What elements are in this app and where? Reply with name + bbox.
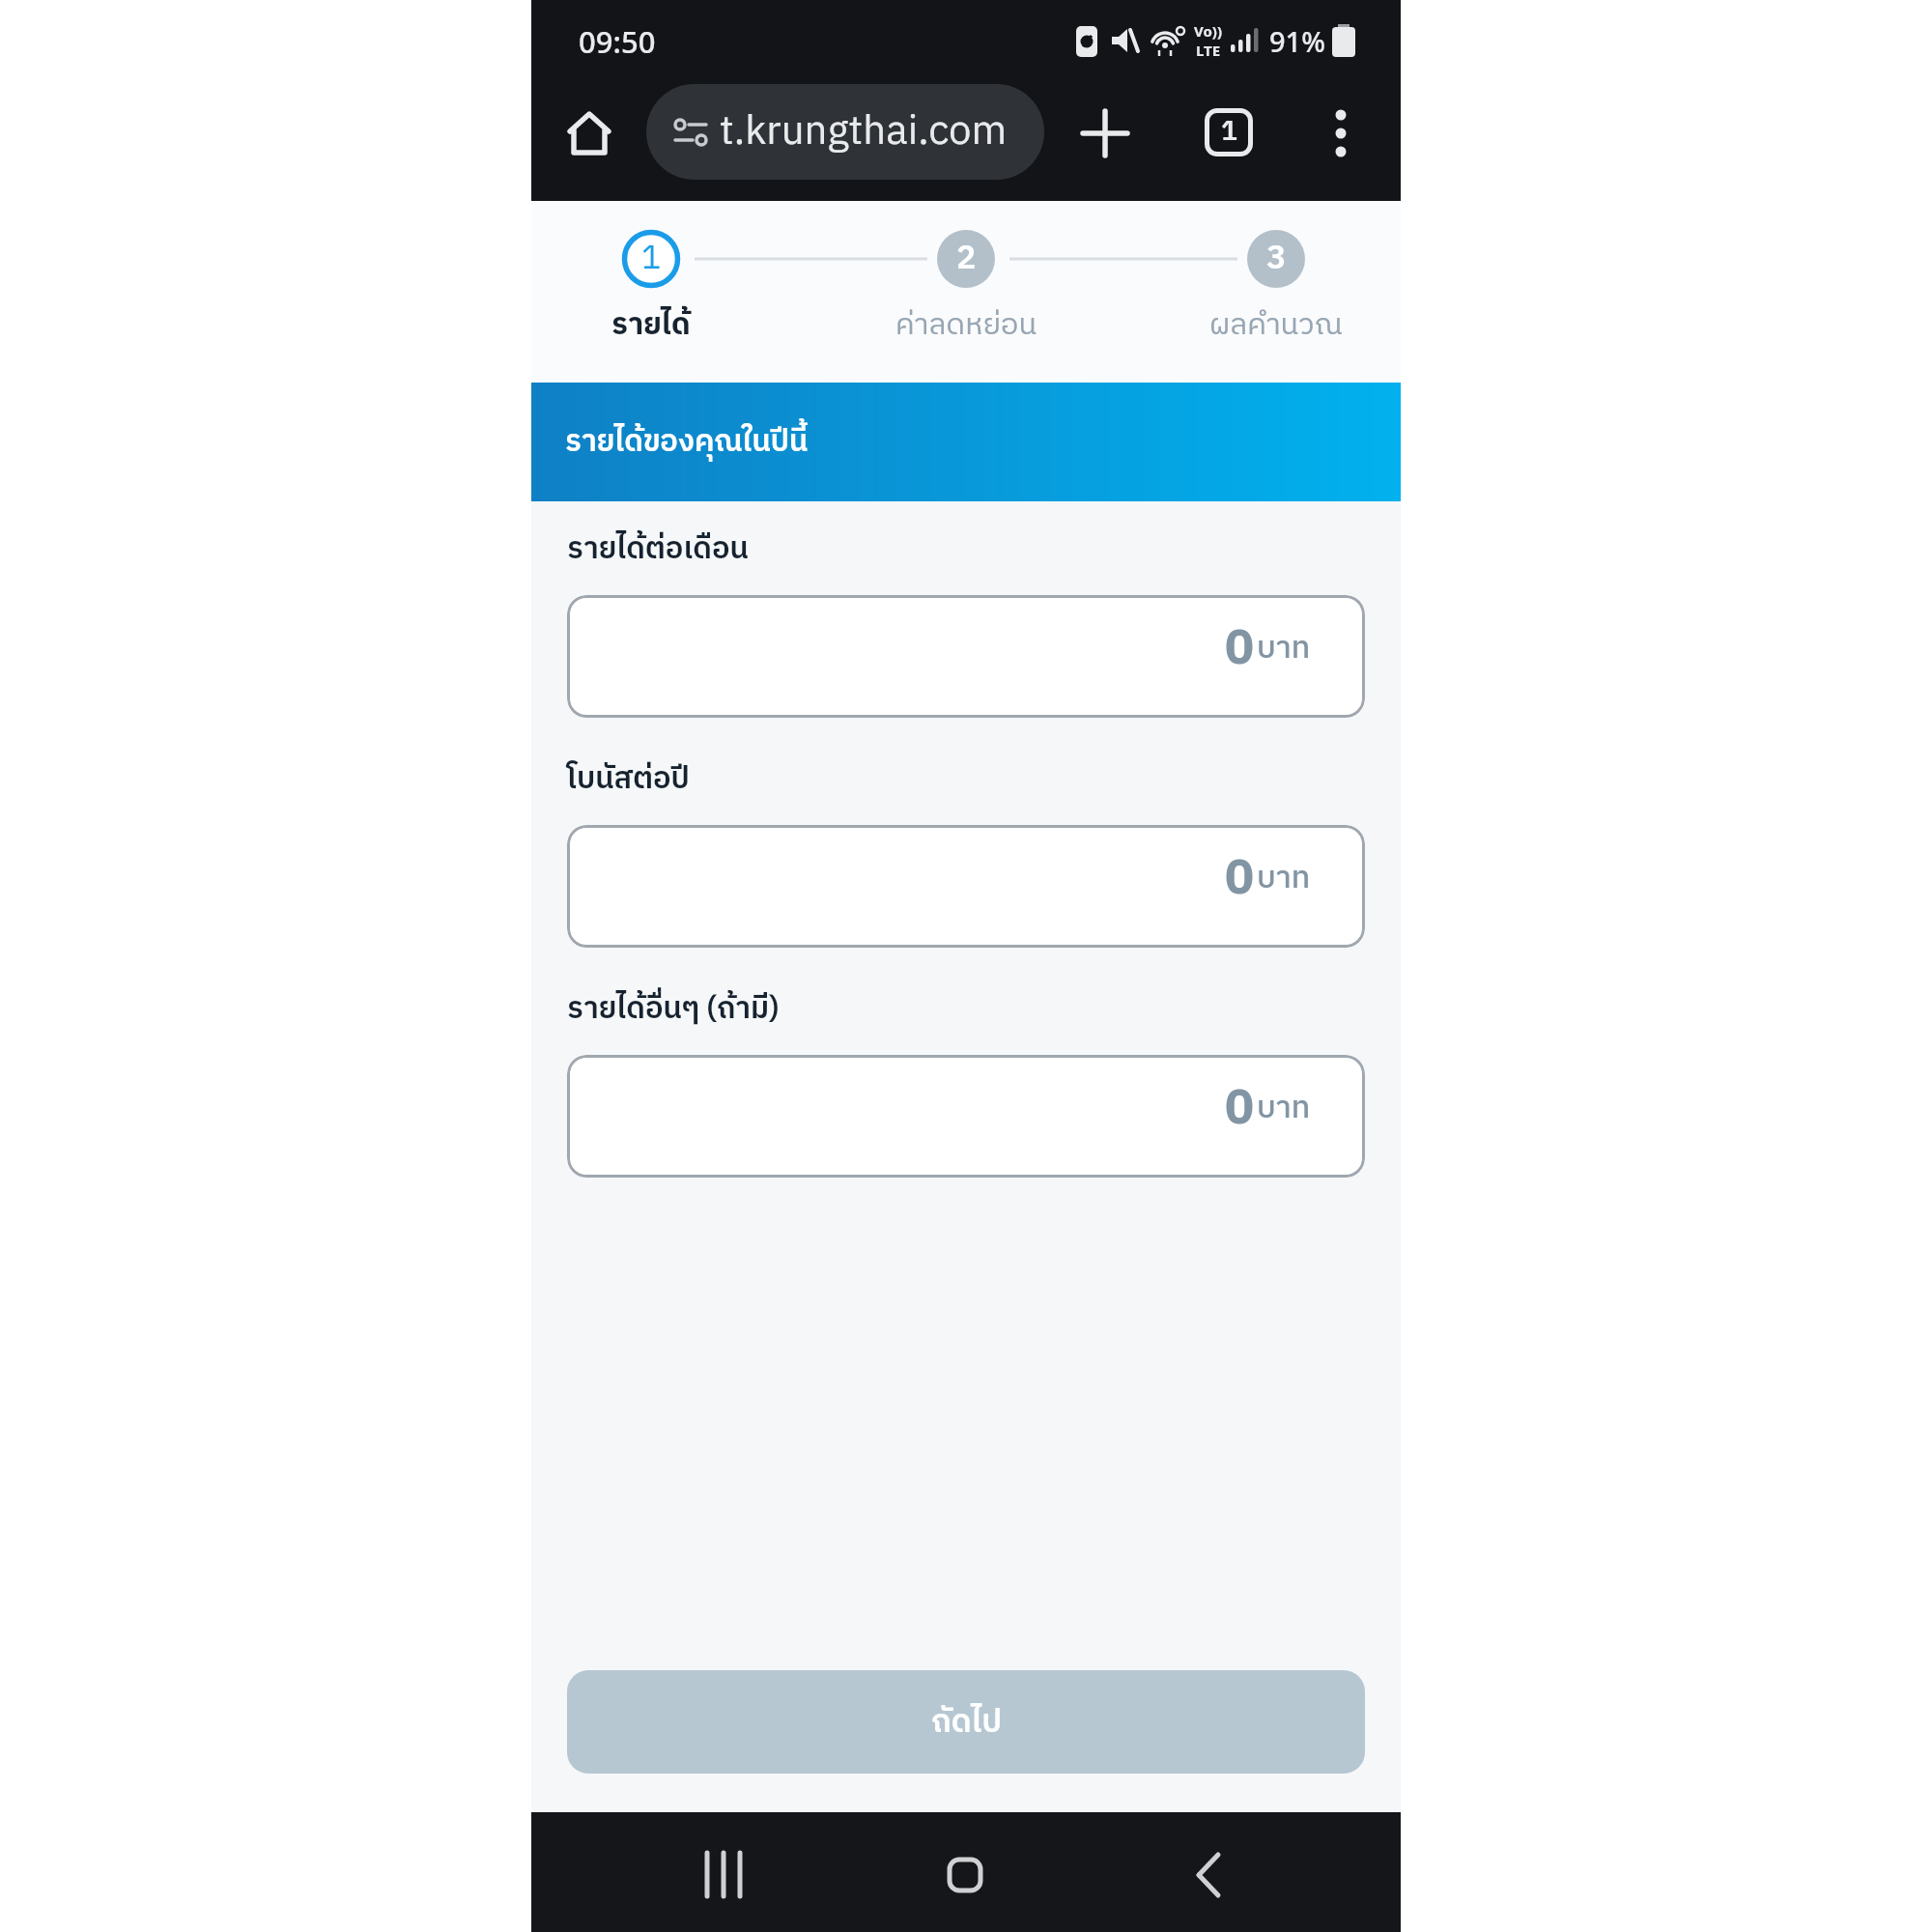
button[interactable]: ค่าลดหย่อน xyxy=(840,294,1092,355)
button[interactable]: t.krungthai.com xyxy=(646,84,1044,180)
staticText: ผลคำนวณ xyxy=(1209,300,1343,350)
staticText: 91% xyxy=(1269,22,1325,60)
staticText: รายได้ต่อเดือน xyxy=(567,525,749,574)
staticText: รายได้อื่นๆ (ถ้ามี) xyxy=(567,984,780,1034)
button[interactable]: 0 xyxy=(567,595,1365,718)
staticText: t.krungthai.com xyxy=(720,99,1008,165)
button[interactable]: 0 xyxy=(567,825,1365,948)
staticText: 2 xyxy=(956,232,977,286)
staticText: Vo)) xyxy=(1194,21,1222,41)
staticText: รายได้ xyxy=(611,300,691,350)
button[interactable]: ถัดไป xyxy=(567,1670,1365,1774)
button[interactable] xyxy=(948,1858,982,1892)
staticText: LTE xyxy=(1196,41,1221,60)
staticText: ถัดไป xyxy=(931,1696,1002,1748)
staticText: บาท xyxy=(1257,853,1311,904)
button[interactable]: ผลคำนวณ xyxy=(1151,294,1402,355)
button[interactable] xyxy=(699,1851,748,1899)
staticText: 3 xyxy=(1266,232,1287,286)
button[interactable]: รายได้ xyxy=(526,294,777,355)
staticText: บาท xyxy=(1257,1083,1311,1134)
button[interactable] xyxy=(566,110,612,156)
staticText: 0 xyxy=(1225,839,1254,920)
staticText: รายได้ของคุณในปีนี้ xyxy=(565,417,809,467)
staticText: โบนัสต่อปี xyxy=(567,754,690,804)
staticText: 0 xyxy=(1225,1069,1254,1150)
button[interactable]: 0 xyxy=(567,1055,1365,1178)
staticText: 0 xyxy=(1225,610,1254,690)
staticText: 1 xyxy=(641,232,662,286)
staticText: ค่าลดหย่อน xyxy=(895,300,1037,350)
button[interactable]: 1 xyxy=(1205,108,1253,156)
button[interactable] xyxy=(1080,108,1130,158)
staticText: 09:50 xyxy=(579,21,656,62)
staticText: 1 xyxy=(1221,110,1237,155)
button[interactable] xyxy=(1191,1853,1232,1893)
staticText: บาท xyxy=(1257,623,1311,674)
button[interactable] xyxy=(1329,102,1352,164)
